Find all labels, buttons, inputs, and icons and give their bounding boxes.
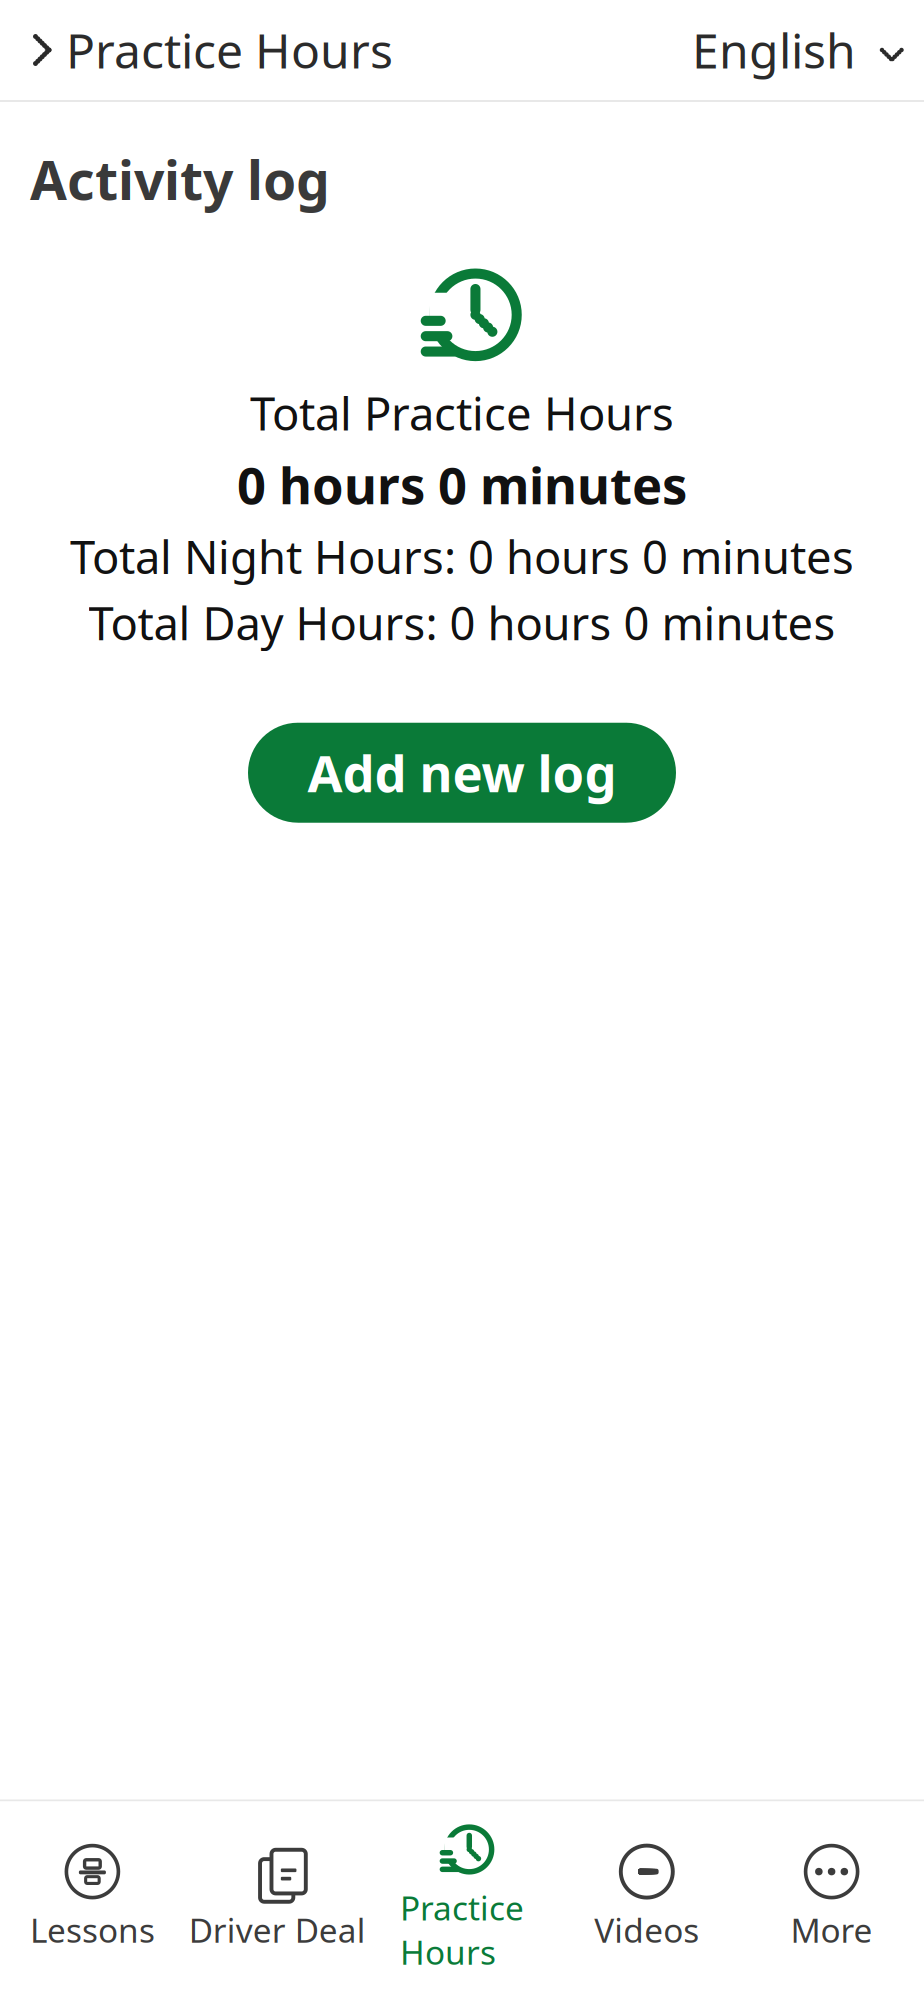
staticText: Add new log bbox=[307, 739, 616, 806]
staticText: Practice Hours bbox=[400, 1885, 524, 1974]
button[interactable]: Driver Deal bbox=[185, 1824, 370, 1978]
staticText: More bbox=[791, 1908, 873, 1952]
staticText: Driver Deal bbox=[189, 1908, 366, 1952]
staticText: Lessons bbox=[30, 1908, 155, 1952]
staticText: Total Night Hours: 0 hours 0 minutes bbox=[70, 526, 854, 586]
button[interactable]: English bbox=[692, 2, 924, 98]
button[interactable]: Back to Practice Hours bbox=[0, 2, 393, 98]
staticText: Activity log bbox=[30, 144, 330, 215]
staticText: 0 hours 0 minutes bbox=[237, 451, 687, 518]
button[interactable]: Videos bbox=[554, 1824, 739, 1978]
staticText: Total Practice Hours bbox=[250, 383, 674, 443]
button[interactable]: Practice Hours bbox=[370, 1801, 554, 2000]
staticText: Practice Hours bbox=[66, 18, 393, 82]
button[interactable]: More bbox=[739, 1824, 924, 1978]
button[interactable]: Add new log bbox=[248, 723, 676, 823]
staticText: English bbox=[692, 18, 856, 82]
staticText: Videos bbox=[594, 1908, 699, 1952]
staticText: Total Day Hours: 0 hours 0 minutes bbox=[88, 592, 835, 653]
button[interactable]: Lessons bbox=[0, 1824, 185, 1978]
